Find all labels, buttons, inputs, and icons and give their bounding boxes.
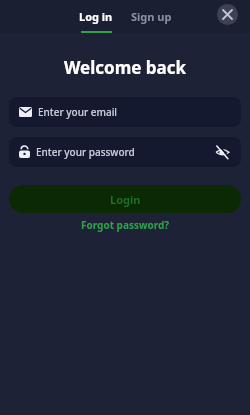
staticText: Login: [110, 192, 141, 207]
staticText: Enter your email: [38, 105, 118, 119]
button[interactable]: Log in: [79, 0, 113, 33]
staticText: Sign up: [131, 9, 172, 24]
staticText: Welcome back: [0, 56, 250, 79]
staticText: Forgot password?: [81, 218, 170, 232]
button[interactable]: Enter your email: [9, 97, 241, 127]
button[interactable]: Sign up: [131, 0, 172, 33]
staticText: Enter your password: [36, 145, 135, 159]
button[interactable]: Enter your password: [9, 137, 241, 167]
button[interactable]: Forgot password?: [77, 215, 174, 235]
staticText: Log in: [79, 9, 113, 24]
button[interactable]: [217, 4, 238, 25]
button[interactable]: Login: [9, 185, 241, 213]
